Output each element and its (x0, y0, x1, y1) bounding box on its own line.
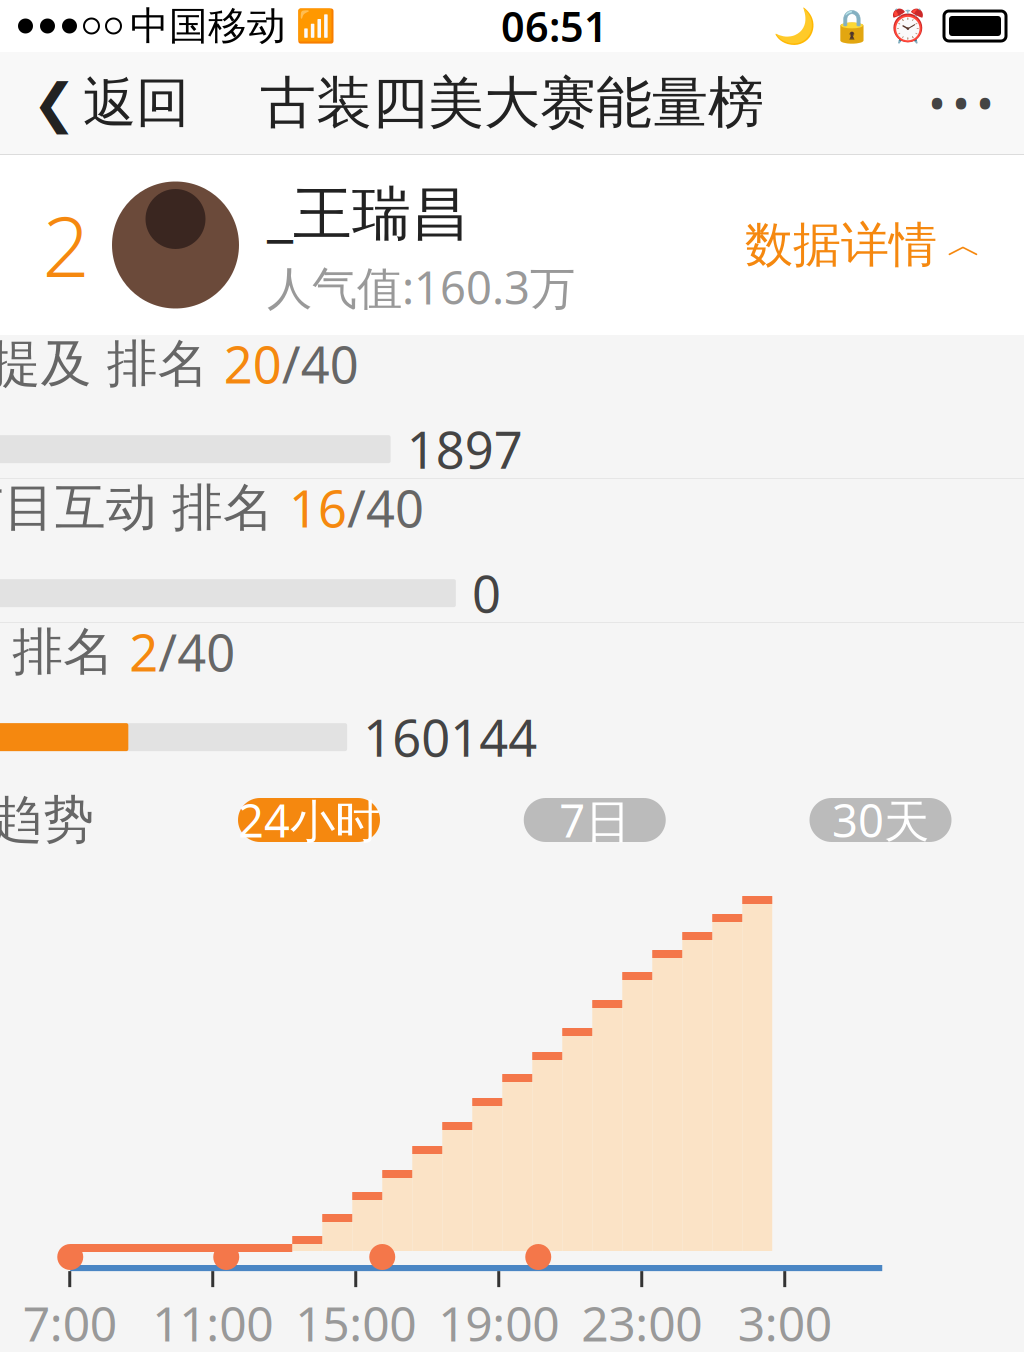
staticText: 古装四美大赛能量榜 (260, 69, 764, 137)
staticText: 🌙 (773, 6, 816, 46)
staticText: 19:00 (438, 1291, 559, 1355)
staticText: • • • (930, 78, 992, 128)
staticText: 0 (472, 559, 501, 627)
staticText: ︿ (947, 224, 982, 266)
staticText: 15:00 (295, 1291, 416, 1355)
staticText: 160144 (363, 703, 537, 771)
button[interactable]: 7日 (524, 798, 666, 842)
staticText: /40 (158, 618, 235, 685)
staticText: 节目互动 排名 (0, 477, 289, 539)
button[interactable]: 更多 (906, 58, 1016, 148)
staticText: 人气值:160.3万 (267, 257, 575, 317)
button[interactable]: 24小时 (238, 798, 380, 842)
staticText: 🔒 (832, 8, 872, 44)
staticText: ❮ (32, 73, 77, 133)
staticText: 📶 (296, 8, 336, 44)
staticText: 节目提及 排名 (0, 333, 224, 395)
staticText: 23:00 (581, 1291, 702, 1355)
button[interactable]: ❮ (8, 56, 213, 150)
staticText: 返回 (83, 70, 189, 136)
staticText: 7日 (559, 790, 630, 850)
staticText: 数据详情 (745, 215, 937, 274)
button[interactable]: 数据详情 (729, 199, 998, 290)
button[interactable]: 30天 (809, 798, 951, 842)
staticText: 1897 (407, 415, 523, 483)
staticText: 3:00 (738, 1291, 832, 1355)
staticText: 加油卡 排名 (0, 621, 129, 683)
staticText: 2 (42, 190, 89, 300)
staticText: 中国移动 (130, 2, 286, 50)
staticText: 趋势 (0, 789, 94, 851)
staticText: 2 (129, 618, 158, 685)
staticText: /40 (282, 330, 359, 397)
staticText: 7:00 (23, 1291, 117, 1355)
staticText: ⏰ (888, 8, 928, 44)
staticText: 16 (289, 474, 347, 541)
staticText: /40 (347, 474, 424, 541)
staticText: 30天 (832, 790, 929, 850)
staticText: _王瑞昌 (267, 173, 470, 251)
staticText: 20 (224, 330, 282, 397)
staticText: 24小时 (238, 790, 380, 850)
staticText: 06:51 (501, 0, 608, 53)
staticText: 11:00 (152, 1291, 273, 1355)
